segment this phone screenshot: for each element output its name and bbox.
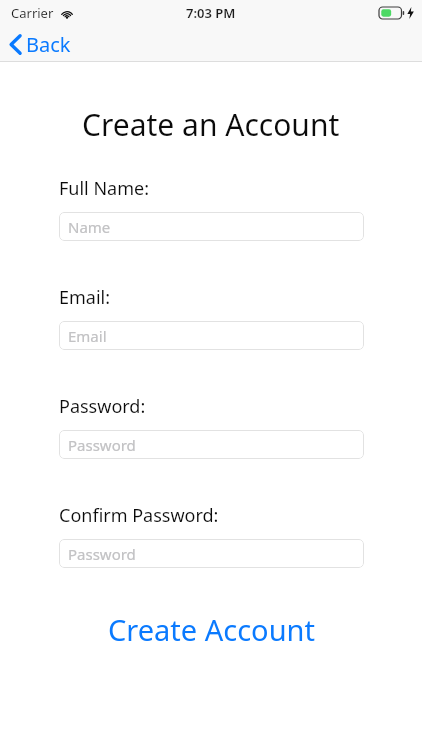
button[interactable]: Password bbox=[59, 430, 364, 459]
staticText: Back bbox=[26, 31, 71, 58]
staticText: Carrier bbox=[11, 4, 54, 22]
staticText: Password bbox=[68, 435, 136, 455]
button[interactable]: Name bbox=[59, 212, 364, 241]
button[interactable]: Create Account bbox=[0, 607, 422, 651]
staticText: Email bbox=[68, 326, 107, 346]
staticText: Create an Account bbox=[82, 104, 340, 145]
staticText: Confirm Password: bbox=[59, 503, 219, 528]
staticText: Create Account bbox=[108, 610, 315, 649]
other: Back bbox=[10, 35, 21, 54]
button[interactable]: Email bbox=[59, 321, 364, 350]
staticText: Name bbox=[68, 217, 111, 237]
staticText: 7:03 PM bbox=[186, 4, 236, 22]
staticText: Email: bbox=[59, 285, 111, 310]
staticText: Password: bbox=[59, 394, 146, 419]
staticText: Password bbox=[68, 544, 136, 564]
button[interactable]: Password bbox=[59, 539, 364, 568]
button[interactable]: Back bbox=[0, 26, 81, 62]
staticText: Full Name: bbox=[59, 176, 150, 201]
